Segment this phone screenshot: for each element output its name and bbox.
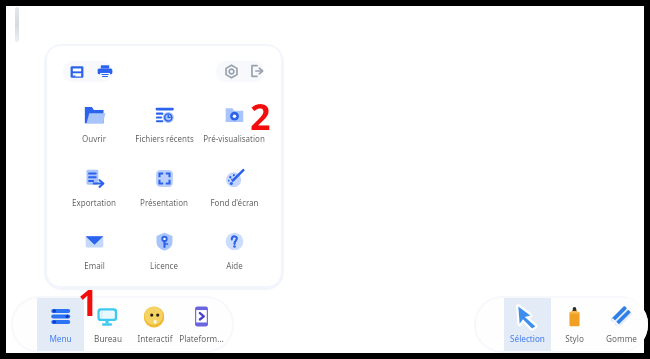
staticText: Licence	[150, 260, 178, 271]
staticText: Email	[84, 260, 105, 271]
staticText: Ouvrir	[82, 133, 106, 144]
button[interactable]: Enregistrer	[66, 61, 88, 82]
staticText: Exportation	[72, 197, 116, 208]
staticText: Fichiers récents	[135, 133, 194, 144]
staticText: Plateform...	[179, 333, 224, 344]
staticText: Présentation	[140, 197, 188, 208]
staticText: Bureau	[94, 333, 122, 344]
button[interactable]: Paramètres	[220, 61, 242, 82]
button[interactable]: Exportation	[59, 168, 129, 216]
button[interactable]: Présentation	[129, 168, 199, 216]
button[interactable]: Quitter	[250, 61, 264, 82]
button[interactable]: Sélection	[504, 298, 551, 351]
button[interactable]: Email	[59, 231, 129, 279]
button[interactable]: Licence	[129, 231, 199, 279]
button[interactable]: Bureau	[84, 298, 131, 351]
staticText: 1	[78, 279, 99, 327]
button[interactable]: Plateform...	[178, 298, 225, 351]
staticText: 2	[250, 92, 271, 141]
staticText: Aide	[226, 260, 243, 271]
button[interactable]: Ouvrir	[59, 104, 129, 152]
staticText: Pré-visualisation	[203, 133, 265, 144]
button[interactable]: Interactif	[131, 298, 178, 351]
staticText: Stylo	[565, 333, 584, 344]
staticText: Interactif	[137, 333, 173, 344]
button[interactable]: Menu	[37, 298, 84, 351]
button[interactable]: Pré-visualisation	[199, 104, 269, 152]
button[interactable]: Gomme	[598, 298, 645, 351]
button[interactable]: Aide	[199, 231, 269, 279]
button[interactable]: Imprimer	[97, 61, 113, 82]
staticText: Menu	[49, 333, 72, 344]
button[interactable]: Stylo	[551, 298, 598, 351]
staticText: Fond d'écran	[210, 197, 259, 208]
button[interactable]: Fichiers récents	[129, 104, 199, 152]
button[interactable]: Fond d'écran	[199, 168, 269, 216]
staticText: Sélection	[510, 333, 545, 344]
staticText: Gomme	[606, 333, 637, 344]
